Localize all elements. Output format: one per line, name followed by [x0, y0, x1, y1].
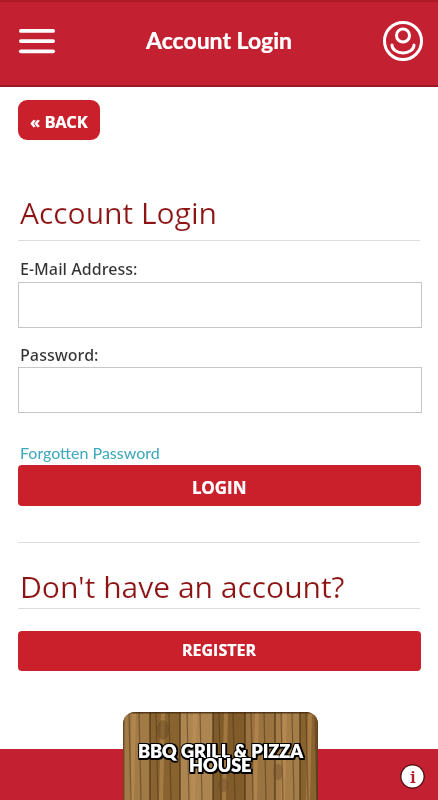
staticText: HOUSE	[189, 756, 252, 778]
staticText: BBQ GRILL & PIZZA	[140, 739, 306, 761]
staticText: BBQ GRILL & PIZZA	[140, 742, 306, 764]
staticText: BBQ GRILL & PIZZA	[137, 740, 303, 762]
staticText: E-Mail Address:	[20, 258, 138, 280]
button[interactable]	[380, 18, 426, 64]
staticText: HOUSE	[191, 754, 254, 776]
button[interactable]	[18, 282, 422, 328]
staticText: BBQ GRILL & PIZZA	[140, 740, 306, 762]
staticText: BBQ GRILL & PIZZA	[138, 739, 304, 761]
staticText: Account Login	[146, 26, 292, 54]
button[interactable]: BBQ GRILL & PIZZA	[123, 712, 318, 800]
staticText: HOUSE	[189, 753, 252, 775]
button[interactable]: REGISTER	[18, 631, 421, 671]
button[interactable]	[12, 22, 62, 64]
button[interactable]: i	[400, 764, 425, 789]
staticText: Don't have an account?	[20, 566, 345, 607]
staticText: BBQ GRILL & PIZZA	[137, 742, 303, 764]
button[interactable]	[18, 367, 422, 413]
staticText: Account Login	[20, 192, 218, 233]
staticText: HOUSE	[188, 754, 251, 776]
staticText: HOUSE	[191, 756, 254, 778]
button[interactable]: Forgotten Password	[20, 443, 160, 462]
staticText: HOUSE	[188, 756, 251, 778]
staticText: LOGIN	[192, 476, 247, 499]
button[interactable]: LOGIN	[18, 465, 421, 506]
staticText: HOUSE	[188, 753, 251, 775]
staticText: i	[410, 765, 416, 788]
staticText: HOUSE	[189, 754, 252, 776]
staticText: BBQ GRILL & PIZZA	[137, 739, 303, 761]
staticText: BBQ GRILL & PIZZA	[138, 742, 304, 764]
staticText: REGISTER	[182, 639, 257, 661]
staticText: Password:	[20, 344, 99, 366]
staticText: « BACK	[30, 110, 88, 132]
staticText: HOUSE	[191, 753, 254, 775]
staticText: BBQ GRILL & PIZZA	[138, 740, 304, 762]
button[interactable]: « BACK	[18, 100, 100, 140]
